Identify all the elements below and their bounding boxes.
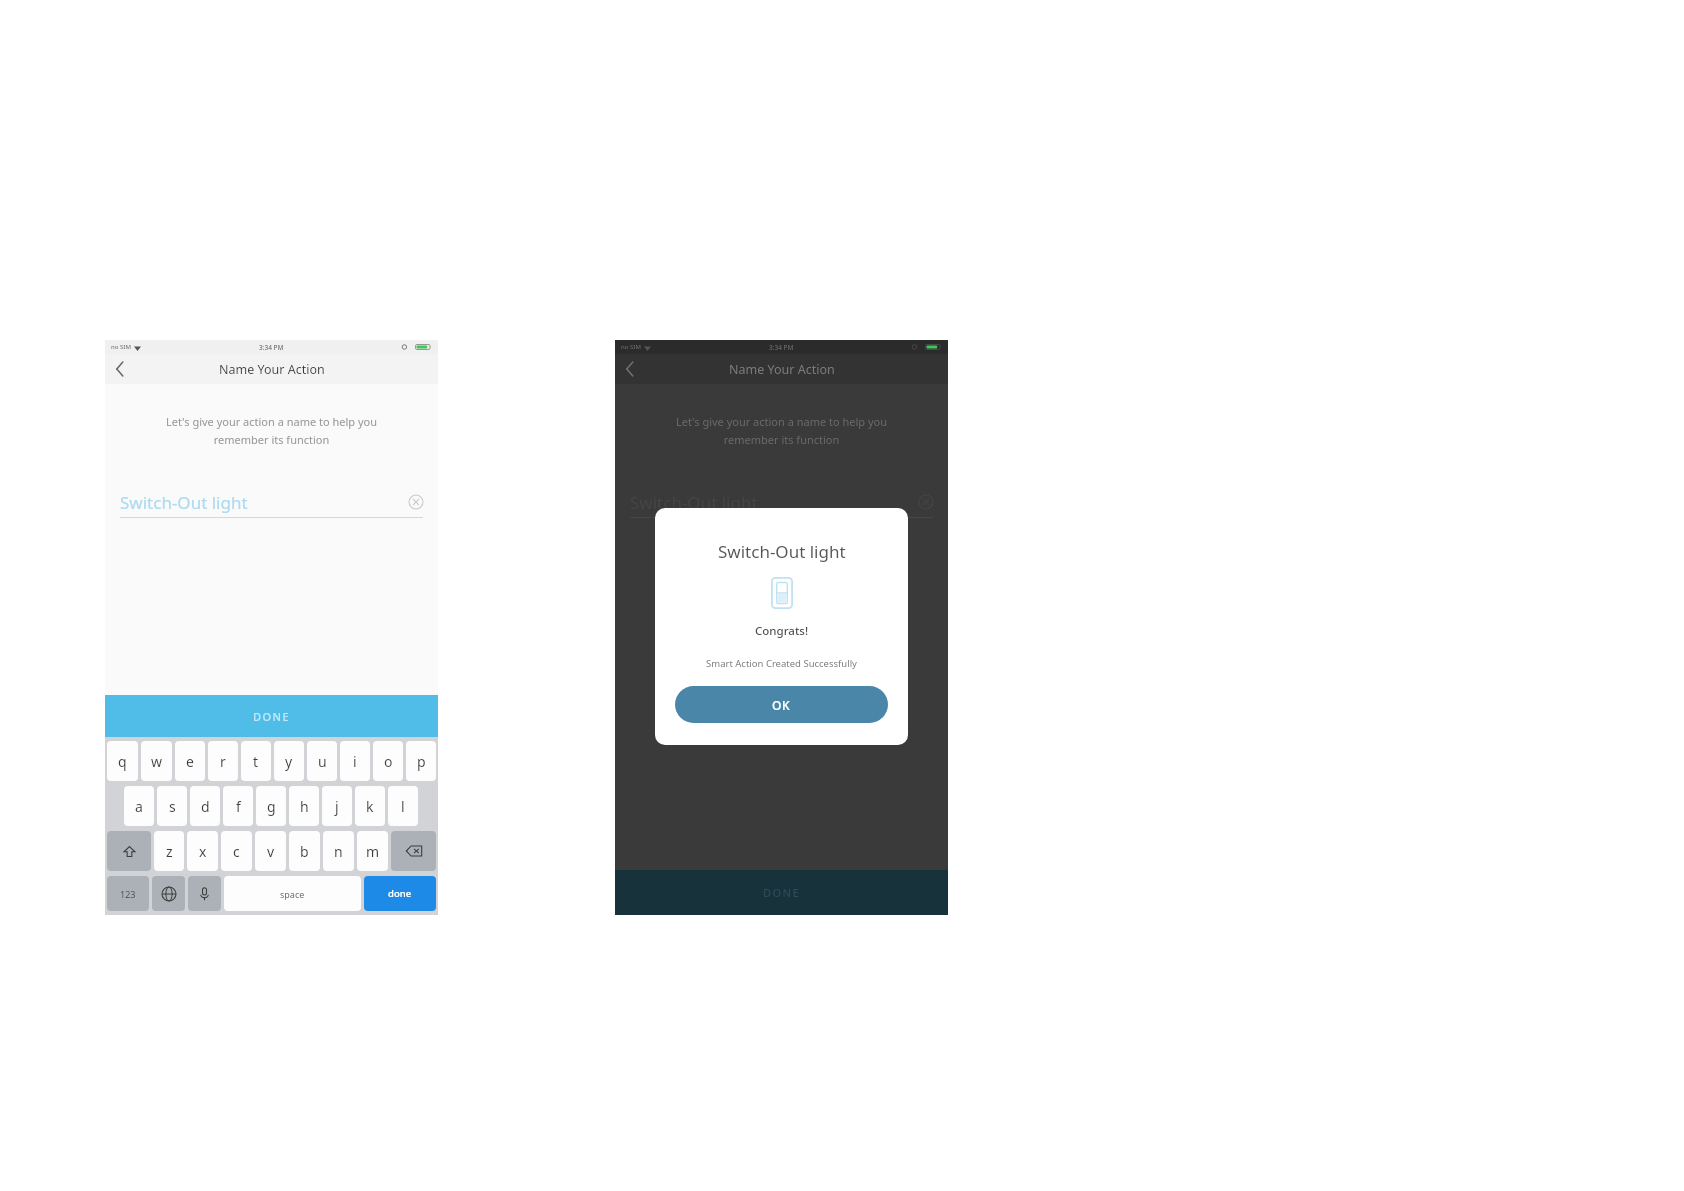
button[interactable]: f [223, 786, 253, 826]
button[interactable]: Backspace [391, 831, 436, 871]
staticText: p [417, 752, 426, 771]
staticText: w [151, 752, 163, 771]
button[interactable]: Back [615, 354, 645, 384]
button[interactable]: l [388, 786, 418, 826]
staticText: no SIM [621, 343, 641, 351]
staticText: space [280, 888, 305, 900]
button[interactable]: e [175, 741, 205, 781]
staticText: no SIM [111, 343, 131, 351]
staticText: DONE [253, 709, 290, 724]
button[interactable]: i [340, 741, 370, 781]
staticText: a [135, 797, 143, 816]
button[interactable]: x [187, 831, 218, 871]
staticText: Switch-Out light [120, 491, 409, 514]
button[interactable]: h [289, 786, 319, 826]
staticText: OK [772, 697, 791, 713]
button[interactable]: OK [675, 686, 888, 723]
staticText: j [335, 797, 339, 816]
button[interactable]: a [124, 786, 154, 826]
staticText: i [353, 752, 357, 771]
staticText: d [201, 797, 210, 816]
button[interactable]: k [355, 786, 385, 826]
staticText: Congrats! [755, 623, 809, 639]
button[interactable]: r [208, 741, 238, 781]
button[interactable]: n [323, 831, 354, 871]
staticText: Name Your Action [729, 361, 835, 378]
button[interactable]: z [154, 831, 184, 871]
button[interactable]: Back [105, 354, 135, 384]
staticText: Switch-Out light [630, 491, 919, 514]
button[interactable]: u [307, 741, 337, 781]
staticText: 123 [120, 888, 136, 900]
button[interactable]: p [406, 741, 436, 781]
staticText: s [169, 797, 176, 816]
staticText: b [300, 842, 309, 861]
button[interactable]: d [190, 786, 220, 826]
button[interactable]: w [141, 741, 172, 781]
staticText: f [236, 797, 241, 816]
staticText: x [199, 842, 207, 861]
staticText: c [233, 842, 240, 861]
staticText: u [318, 752, 327, 771]
button[interactable]: s [157, 786, 187, 826]
staticText: o [384, 752, 393, 771]
button[interactable]: 123 [107, 876, 149, 911]
button[interactable]: Clear text [409, 495, 423, 509]
button[interactable]: Switch language [152, 876, 185, 911]
staticText: Let's give your action a name to help yo… [131, 414, 412, 447]
button[interactable]: t [241, 741, 271, 781]
staticText: e [186, 752, 194, 771]
staticText: z [166, 842, 173, 861]
button[interactable]: c [221, 831, 252, 871]
button[interactable]: DONE [105, 695, 438, 737]
staticText: n [334, 842, 343, 861]
staticText: h [300, 797, 309, 816]
button[interactable]: space [224, 876, 361, 911]
staticText: q [118, 752, 127, 771]
button[interactable]: v [255, 831, 286, 871]
button[interactable]: Shift [107, 831, 151, 871]
staticText: 3:34 PM [769, 343, 794, 352]
button[interactable]: g [256, 786, 286, 826]
staticText: done [388, 887, 412, 900]
staticText: Let's give your action a name to help yo… [641, 414, 922, 447]
button[interactable]: q [107, 741, 138, 781]
staticText: Smart Action Created Successfully [706, 657, 857, 670]
button[interactable]: done [364, 876, 436, 911]
button[interactable]: y [274, 741, 304, 781]
staticText: 3:34 PM [259, 343, 284, 352]
button[interactable]: o [373, 741, 403, 781]
staticText: g [267, 797, 276, 816]
staticText: y [285, 752, 293, 771]
staticText: l [401, 797, 405, 816]
staticText: m [366, 842, 380, 861]
button[interactable]: Clear text [919, 495, 933, 509]
staticText: Switch-Out light [718, 540, 846, 563]
staticText: v [267, 842, 275, 861]
staticText: k [366, 797, 374, 816]
staticText: DONE [763, 885, 800, 900]
staticText: r [220, 752, 226, 771]
button[interactable]: b [289, 831, 320, 871]
staticText: Name Your Action [219, 361, 325, 378]
staticText: t [253, 752, 259, 771]
button[interactable]: m [357, 831, 388, 871]
button[interactable]: j [322, 786, 352, 826]
button[interactable]: Voice input [188, 876, 221, 911]
